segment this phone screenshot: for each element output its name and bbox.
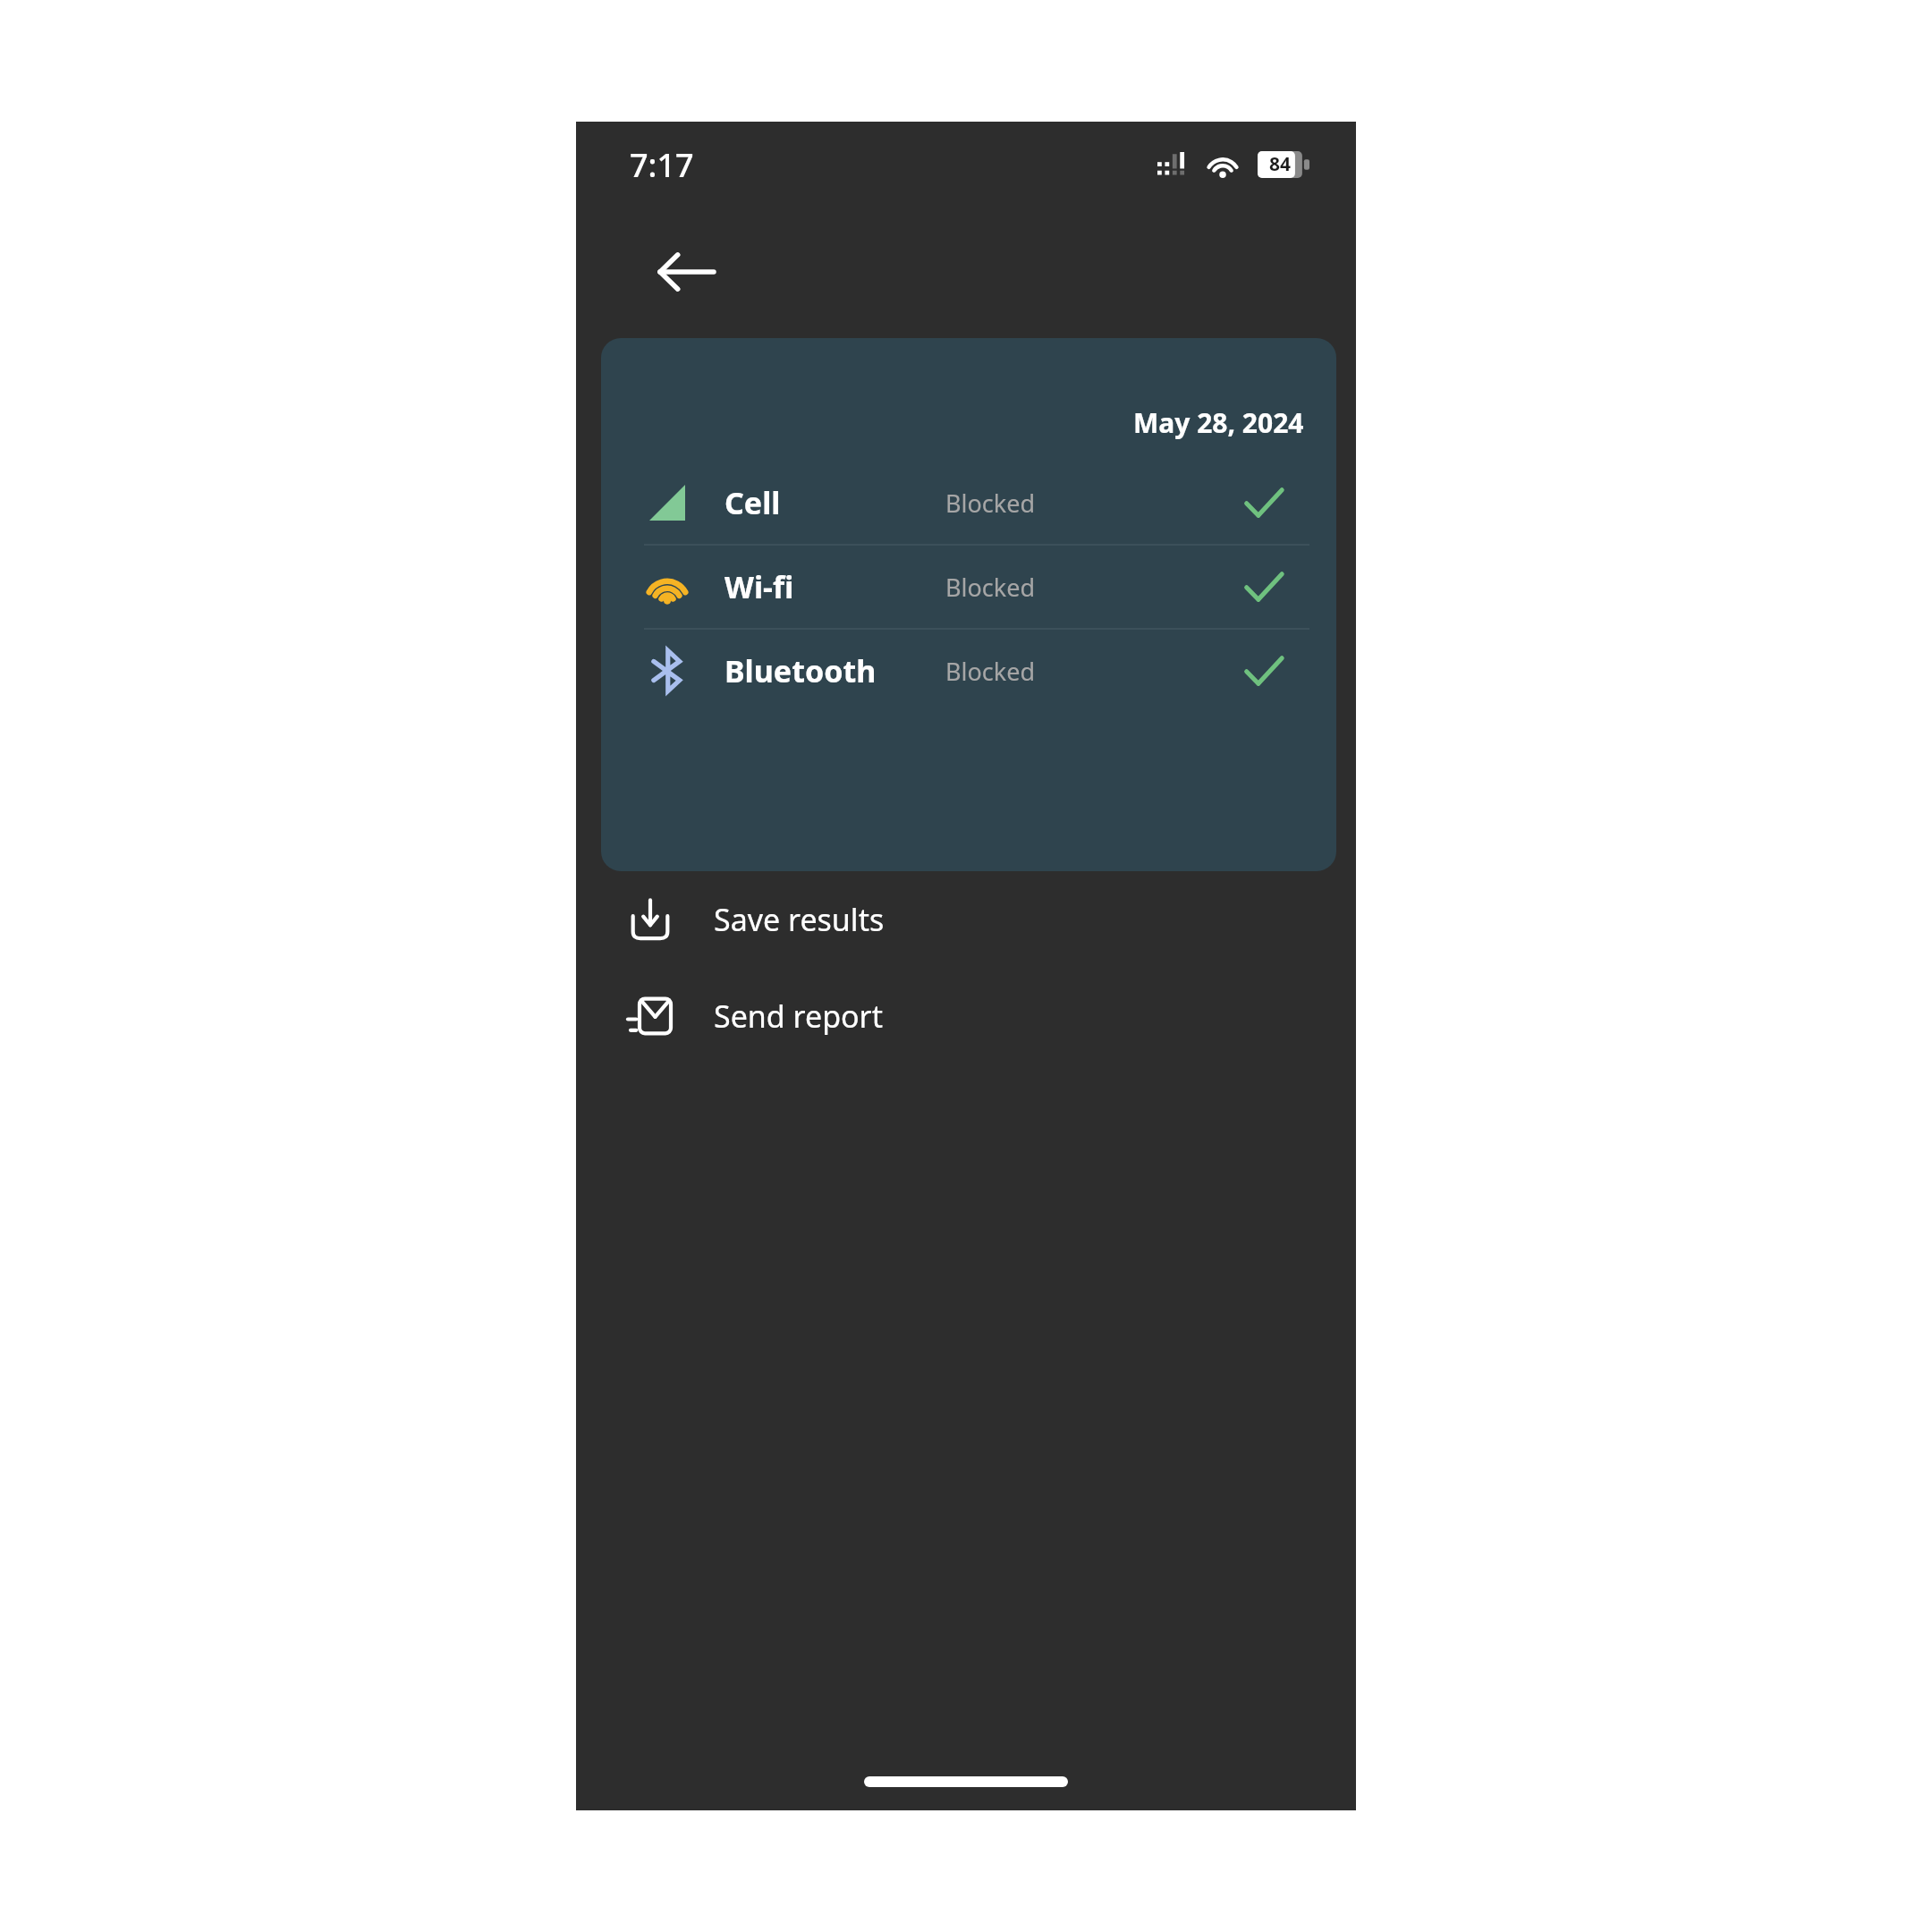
staticText: 7:17 [630, 143, 694, 187]
staticText: Send report [714, 996, 883, 1037]
staticText: Blocked [945, 571, 1036, 604]
button[interactable]: Bluetooth [601, 630, 1336, 712]
button[interactable]: Send report [576, 968, 1356, 1064]
button[interactable]: Wi-fi [601, 546, 1336, 628]
staticText: Bluetooth [724, 650, 877, 691]
staticText: Save results [714, 899, 885, 940]
staticText: Blocked [945, 487, 1036, 520]
staticText: Blocked [945, 655, 1036, 688]
staticText: May 28, 2024 [1133, 404, 1304, 441]
button[interactable]: Cell [601, 462, 1336, 544]
staticText: Cell [724, 482, 781, 523]
staticText: Wi-fi [724, 566, 794, 607]
button[interactable]: Back [644, 234, 730, 309]
staticText: 84 [1258, 151, 1302, 177]
button[interactable]: Save results [576, 871, 1356, 968]
